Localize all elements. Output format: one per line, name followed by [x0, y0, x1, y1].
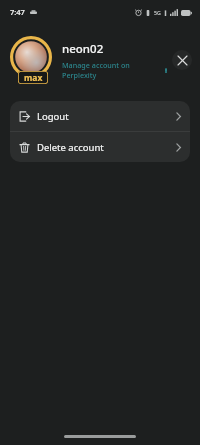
staticText: Manage account on Perplexity	[62, 60, 166, 80]
staticText: 5G	[154, 9, 161, 16]
staticText: Delete account	[37, 141, 104, 154]
staticText: neon02	[62, 41, 104, 57]
button[interactable]: Close	[172, 50, 192, 70]
button[interactable]: Logout	[10, 101, 190, 131]
staticText: Logout	[37, 110, 69, 123]
staticText: max	[24, 72, 43, 84]
button[interactable]: Delete account	[10, 132, 190, 162]
staticText: 7:47	[10, 7, 25, 17]
